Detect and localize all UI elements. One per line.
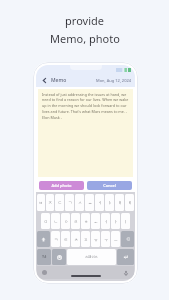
button[interactable]: Enter	[117, 249, 134, 265]
button[interactable]: Backspace	[121, 231, 134, 247]
staticText: ㅂ	[39, 200, 43, 205]
staticText: !?#	[42, 255, 47, 259]
button[interactable]: ㄹ	[71, 213, 80, 229]
staticText: ㅜ	[104, 237, 108, 242]
staticText: ㅔ	[128, 200, 132, 205]
button[interactable]: Voice input	[123, 270, 129, 276]
button[interactable]: ㅜ	[101, 231, 110, 247]
button[interactable]: ㅂ	[37, 194, 45, 211]
button[interactable]: ㅗ	[91, 213, 100, 229]
staticText: ㄴ	[54, 219, 58, 224]
staticText: Instead of just addressing the issues at…	[42, 92, 129, 120]
staticText: ㄹ	[74, 219, 78, 224]
staticText: ㅐ	[118, 200, 122, 205]
button[interactable]: ㅣ	[121, 213, 130, 229]
button[interactable]: ㅕ	[95, 194, 104, 211]
button[interactable]: ㅔ	[125, 194, 134, 211]
button[interactable]: Cancel	[87, 181, 132, 190]
staticText: Cancel	[103, 183, 116, 188]
staticText: ㅠ	[94, 237, 98, 242]
staticText: ㄷ	[58, 200, 62, 205]
staticText: ㅓ	[104, 219, 108, 224]
button[interactable]: ㅐ	[115, 194, 124, 211]
staticText: ㄱ	[68, 200, 72, 205]
staticText: 스페이스	[85, 255, 98, 259]
staticText: ㅇ	[64, 219, 68, 224]
staticText: provide	[65, 13, 104, 28]
staticText: ㅊ	[74, 237, 78, 242]
button[interactable]: ㅊ	[71, 231, 80, 247]
staticText: ㅎ	[84, 219, 88, 224]
button[interactable]: 스페이스	[67, 249, 116, 265]
button[interactable]: ㅓ	[101, 213, 110, 229]
button[interactable]: ㅠ	[91, 231, 100, 247]
button[interactable]: Symbols	[37, 249, 51, 265]
button[interactable]: ㅅ	[75, 194, 84, 211]
button[interactable]: ㄱ	[65, 194, 74, 211]
button[interactable]: Instead of just addressing the issues at…	[42, 92, 129, 174]
button[interactable]: ㅛ	[85, 194, 94, 211]
button[interactable]: ㅋ	[51, 231, 60, 247]
button[interactable]: ㅏ	[111, 213, 120, 229]
button[interactable]: ㅡ	[111, 231, 120, 247]
button[interactable]: ㄴ	[51, 213, 60, 229]
staticText: ㅗ	[94, 219, 98, 224]
staticText: ㅕ	[98, 200, 102, 205]
staticText: ㅌ	[64, 237, 68, 242]
staticText: Mon, Aug 12, 2024	[96, 78, 131, 83]
staticText: ㅅ	[78, 200, 82, 205]
staticText: ㅑ	[108, 200, 112, 205]
button[interactable]: ㅌ	[61, 231, 70, 247]
button[interactable]: ㄷ	[55, 194, 64, 211]
staticText: Add photo	[51, 183, 72, 188]
staticText: ㅍ	[84, 237, 88, 242]
button[interactable]: ㅎ	[81, 213, 90, 229]
button[interactable]: ㅑ	[105, 194, 114, 211]
staticText: Memo, photo	[50, 31, 120, 46]
staticText: ㅁ	[44, 219, 48, 224]
staticText: ㅋ	[54, 237, 58, 242]
staticText: ㅣ	[124, 219, 128, 224]
staticText: ㅈ	[48, 200, 52, 205]
button[interactable]: Back	[40, 76, 49, 85]
staticText: Memo	[51, 77, 67, 84]
button[interactable]: ㅁ	[41, 213, 50, 229]
staticText: ㅛ	[88, 200, 92, 205]
button[interactable]: ㅈ	[46, 194, 54, 211]
staticText: ㅡ	[114, 237, 118, 242]
button[interactable]: Keyboard settings	[42, 270, 47, 275]
button[interactable]: Emoji	[52, 249, 66, 265]
button[interactable]: ㅇ	[61, 213, 70, 229]
button[interactable]: ㅍ	[81, 231, 90, 247]
button[interactable]: Shift	[37, 231, 50, 247]
staticText: ㅏ	[114, 219, 118, 224]
button[interactable]: Add photo	[39, 181, 84, 190]
